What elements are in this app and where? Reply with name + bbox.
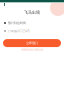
- staticText: 飞马出境: [24, 10, 40, 15]
- staticText: 预计到达时间: [8, 21, 26, 25]
- button[interactable]: 立即预订: [3, 39, 61, 47]
- staticText: 立即预订: [26, 41, 38, 45]
- staticText: 查看服务条款与隐私政策: [21, 48, 43, 51]
- staticText: 订单编号12345: [8, 29, 30, 33]
